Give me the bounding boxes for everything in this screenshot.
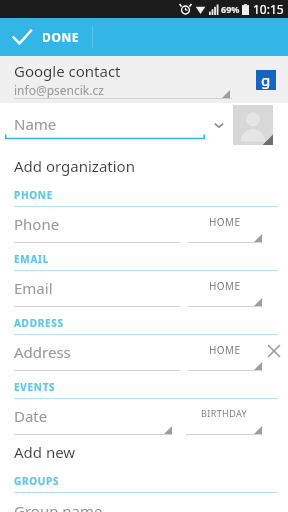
staticText: HOME (209, 215, 241, 229)
staticText: BIRTHDAY (201, 407, 248, 419)
button[interactable]: BIRTHDAY (186, 401, 262, 435)
button[interactable]: Expand name fields (213, 119, 225, 131)
staticText: PHONE (14, 188, 53, 202)
staticText: EMAIL (14, 252, 49, 266)
staticText: Name (14, 114, 57, 134)
staticText: info@psencik.cz (14, 82, 104, 98)
button[interactable]: HOME (188, 337, 262, 371)
staticText: Add organization (14, 156, 135, 176)
staticText: DONE (42, 29, 80, 45)
button[interactable]: Email (14, 273, 180, 307)
button[interactable]: Google account (256, 70, 276, 90)
staticText: ADDRESS (14, 316, 64, 330)
button[interactable]: Add new (0, 437, 288, 467)
staticText: Date (14, 406, 48, 426)
staticText: Address (14, 342, 71, 362)
button[interactable]: Add contact photo (233, 105, 273, 145)
button[interactable]: HOME (188, 209, 262, 243)
staticText: Email (14, 278, 53, 298)
staticText: Google contact (14, 61, 121, 81)
staticText: EVENTS (14, 380, 56, 394)
button[interactable]: Google contact (0, 56, 288, 103)
staticText: Group name (14, 501, 103, 512)
staticText: 69% (221, 3, 240, 15)
button[interactable]: Date (14, 401, 172, 435)
staticText: g (261, 70, 271, 90)
button[interactable]: Add organization (0, 151, 288, 181)
button[interactable]: Delete address (264, 341, 284, 361)
staticText: GROUPS (14, 474, 60, 488)
staticText: HOME (209, 343, 241, 357)
button[interactable]: Phone (14, 209, 180, 243)
staticText: Phone (14, 214, 60, 234)
button[interactable]: Address (14, 337, 180, 371)
staticText: HOME (209, 279, 241, 293)
button[interactable]: HOME (188, 273, 262, 307)
staticText: 10:15 (253, 1, 284, 17)
button[interactable]: DONE (0, 18, 95, 56)
staticText: Add new (14, 442, 76, 462)
